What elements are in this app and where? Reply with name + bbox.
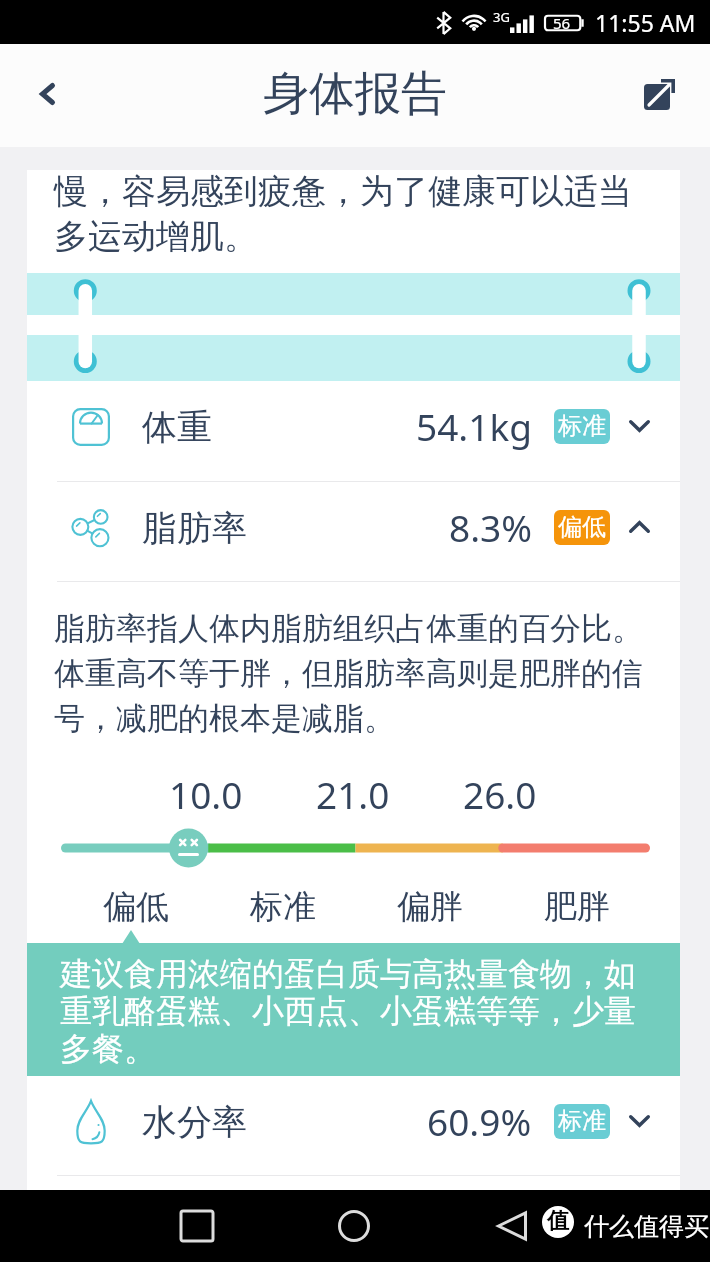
button[interactable]: 水分率: [27, 1076, 680, 1175]
button[interactable]: Share: [626, 44, 710, 147]
staticText: 标准: [558, 1106, 606, 1136]
staticText: 偏胖: [397, 886, 463, 928]
staticText: 标准: [558, 411, 606, 441]
staticText: 54.1kg: [416, 401, 532, 451]
staticText: 脂肪率指人体内脂肪组织占体重的百分比。 体重高不等于胖，但脂肪率高则是肥胖的信 …: [54, 609, 643, 738]
button[interactable]: Back: [480, 1199, 544, 1253]
staticText: 偏低: [103, 886, 169, 928]
staticText: 3G: [493, 8, 510, 26]
staticText: 脂肪率: [142, 506, 247, 550]
button[interactable]: Recent apps: [165, 1199, 229, 1253]
staticText: 值: [547, 1207, 569, 1235]
button[interactable]: 脂肪率: [27, 482, 680, 581]
staticText: 建议食用浓缩的蛋白质与高热量食物，如 重乳酪蛋糕、小西点、小蛋糕等等，少量 多餐…: [60, 954, 636, 1070]
button[interactable]: Back: [0, 44, 84, 147]
staticText: 身体报告: [263, 65, 447, 123]
staticText: 26.0: [463, 769, 537, 819]
staticText: 60.9%: [427, 1096, 532, 1146]
button[interactable]: Home: [322, 1199, 386, 1253]
button[interactable]: 体重: [27, 381, 680, 481]
staticText: 10.0: [169, 769, 243, 819]
staticText: 21.0: [316, 769, 390, 819]
staticText: 11:55 AM: [595, 7, 696, 38]
staticText: 偏低: [558, 512, 606, 542]
staticText: 8.3%: [449, 502, 532, 552]
staticText: 什么值得买: [584, 1211, 709, 1242]
staticText: 慢，容易感到疲惫，为了健康可以适当 多运动增肌。: [54, 170, 632, 258]
staticText: 标准: [250, 886, 316, 928]
staticText: 肥胖: [544, 886, 610, 928]
staticText: 56: [553, 13, 571, 33]
staticText: 水分率: [142, 1100, 247, 1144]
staticText: 体重: [142, 405, 212, 449]
